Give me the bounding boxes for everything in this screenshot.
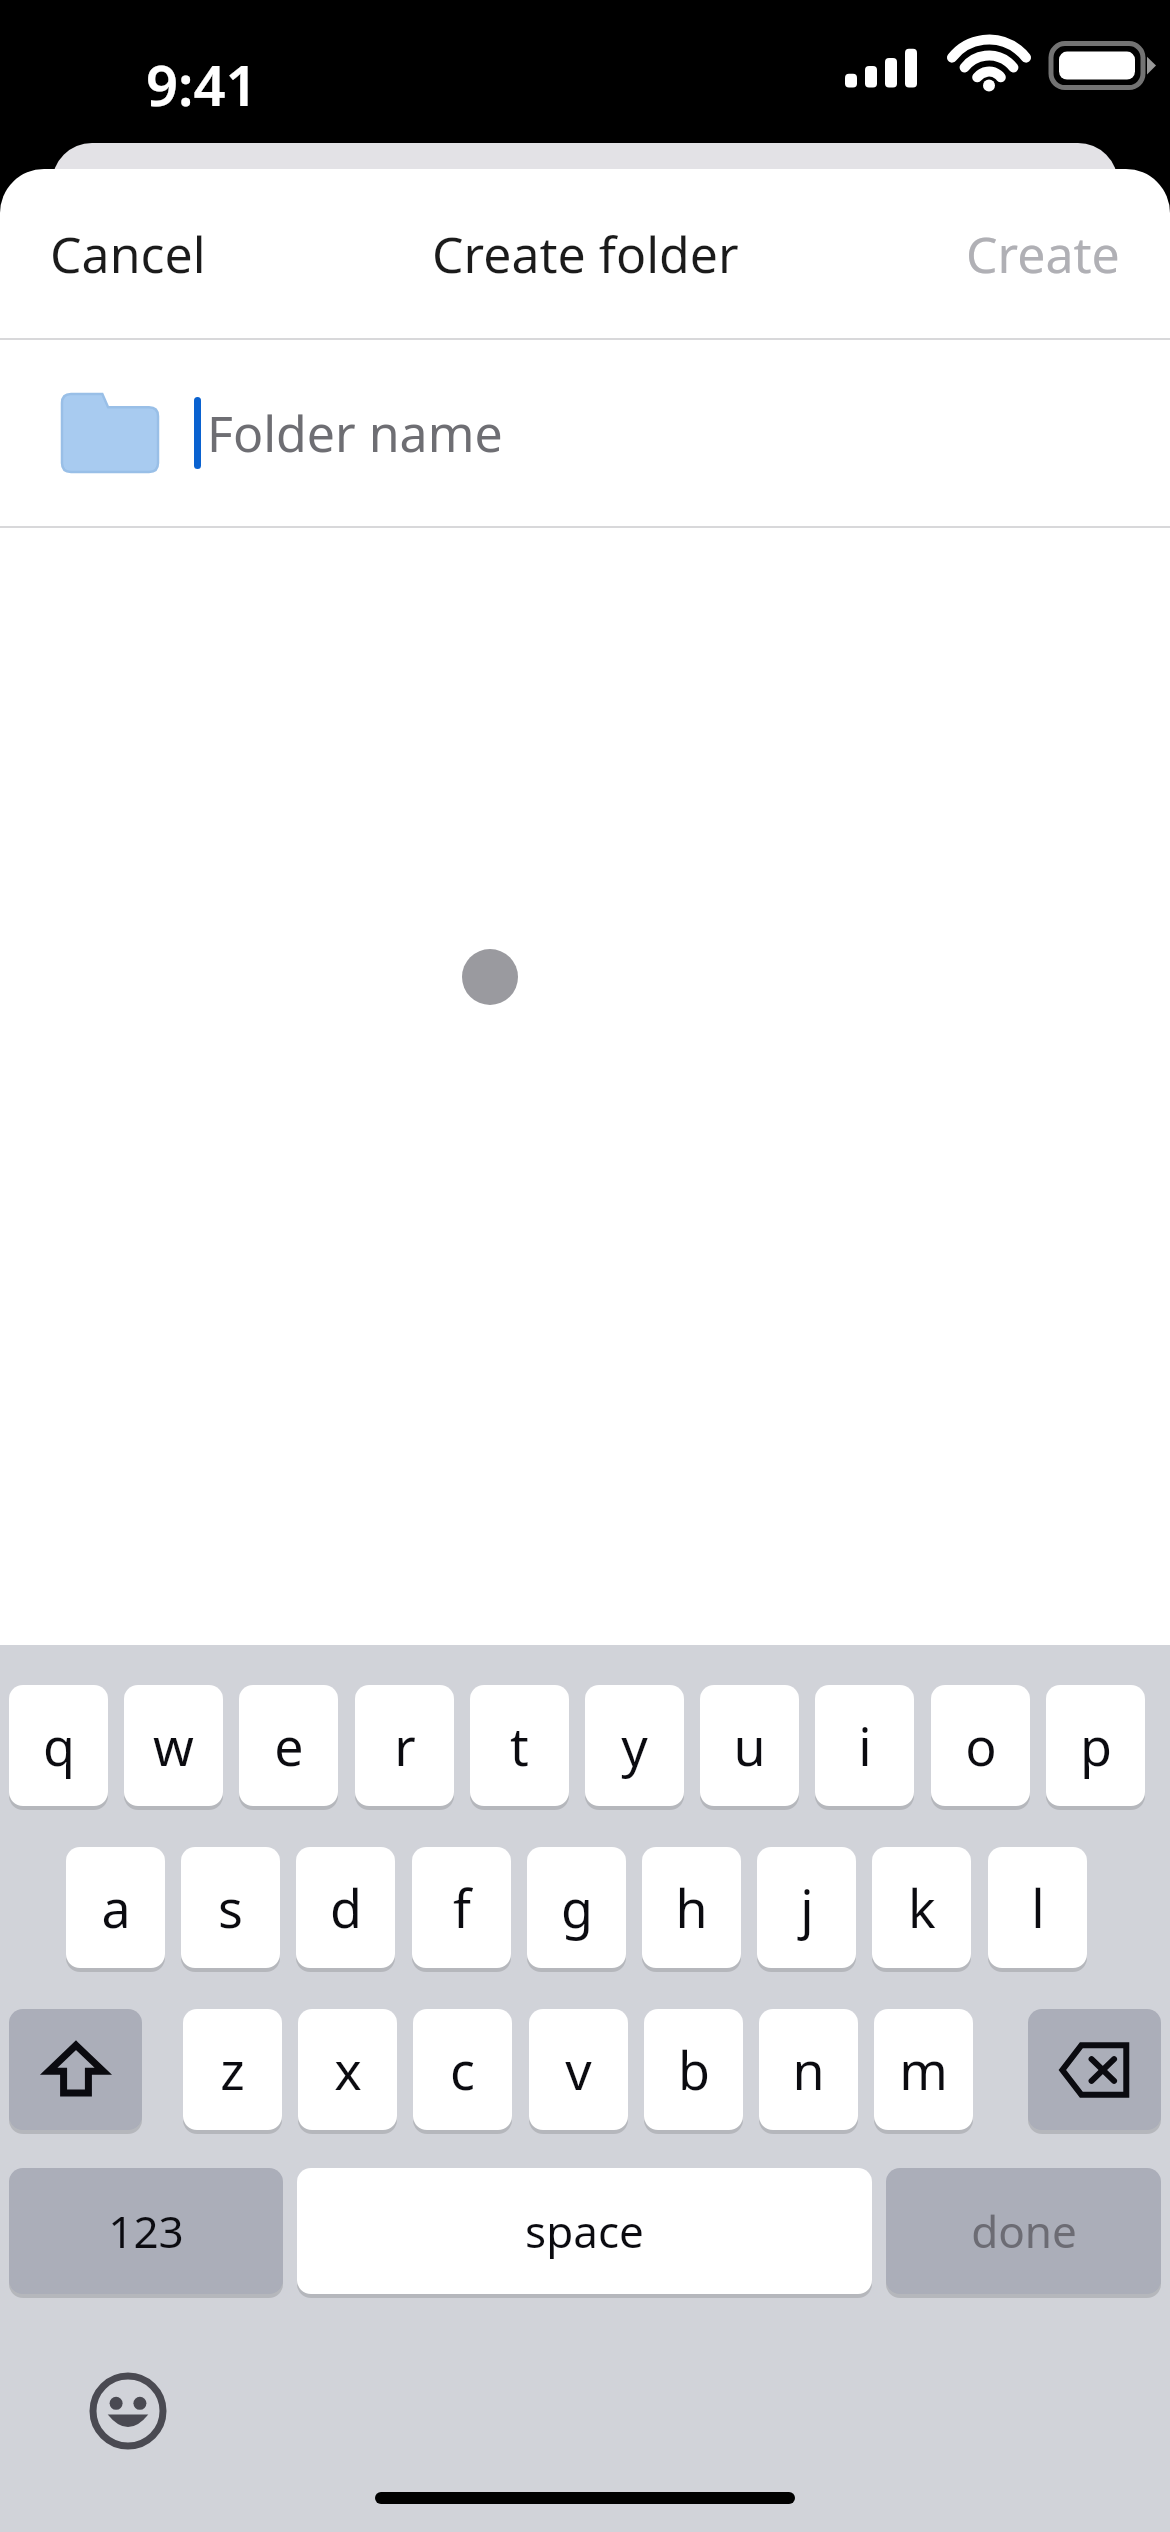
button[interactable]: w: [124, 1685, 223, 1806]
staticText: space: [525, 2201, 644, 2261]
staticText: Folder name: [207, 399, 503, 467]
staticText: v: [565, 2034, 592, 2105]
button[interactable]: d: [296, 1847, 395, 1968]
staticText: o: [965, 1710, 997, 1781]
button[interactable]: j: [757, 1847, 856, 1968]
button[interactable]: Backspace: [1028, 2009, 1161, 2130]
staticText: z: [220, 2034, 245, 2105]
button[interactable]: Cancel: [0, 190, 256, 318]
staticText: w: [153, 1710, 194, 1781]
button[interactable]: c: [413, 2009, 512, 2130]
staticText: m: [899, 2034, 948, 2105]
button[interactable]: t: [470, 1685, 569, 1806]
button[interactable]: s: [181, 1847, 280, 1968]
button[interactable]: p: [1046, 1685, 1145, 1806]
button[interactable]: Emoji keyboard: [72, 2355, 184, 2467]
staticText: 9:41: [146, 46, 258, 122]
staticText: d: [330, 1872, 362, 1943]
staticText: p: [1080, 1710, 1112, 1781]
button[interactable]: u: [700, 1685, 799, 1806]
button[interactable]: v: [529, 2009, 628, 2130]
staticText: f: [453, 1872, 471, 1943]
staticText: t: [510, 1710, 529, 1781]
staticText: a: [101, 1872, 131, 1943]
staticText: n: [792, 2034, 825, 2105]
staticText: y: [621, 1710, 648, 1781]
staticText: x: [334, 2034, 362, 2105]
button[interactable]: space: [297, 2168, 872, 2294]
button[interactable]: r: [355, 1685, 454, 1806]
staticText: i: [858, 1710, 872, 1781]
staticText: 123: [108, 2201, 184, 2261]
button[interactable]: i: [815, 1685, 914, 1806]
staticText: s: [218, 1872, 243, 1943]
staticText: l: [1031, 1872, 1045, 1943]
staticText: done: [971, 2201, 1077, 2261]
button[interactable]: o: [931, 1685, 1030, 1806]
button[interactable]: y: [585, 1685, 684, 1806]
button[interactable]: l: [988, 1847, 1087, 1968]
button[interactable]: z: [183, 2009, 282, 2130]
button[interactable]: a: [66, 1847, 165, 1968]
button[interactable]: h: [642, 1847, 741, 1968]
staticText: e: [274, 1710, 304, 1781]
button[interactable]: n: [759, 2009, 858, 2130]
button[interactable]: f: [412, 1847, 511, 1968]
staticText: q: [43, 1710, 75, 1781]
button[interactable]: b: [644, 2009, 743, 2130]
button[interactable]: m: [874, 2009, 973, 2130]
button[interactable]: Create: [916, 190, 1170, 318]
button[interactable]: q: [9, 1685, 108, 1806]
button[interactable]: Folder name: [0, 340, 1170, 526]
staticText: Create: [966, 220, 1120, 288]
staticText: u: [733, 1710, 766, 1781]
staticText: g: [561, 1872, 593, 1943]
staticText: c: [450, 2034, 475, 2105]
button[interactable]: done: [886, 2168, 1161, 2294]
staticText: Create folder: [432, 220, 739, 288]
button[interactable]: x: [298, 2009, 397, 2130]
staticText: r: [394, 1710, 416, 1781]
staticText: k: [908, 1872, 936, 1943]
button[interactable]: 123: [9, 2168, 283, 2294]
button[interactable]: Shift: [9, 2009, 142, 2130]
button[interactable]: k: [872, 1847, 971, 1968]
staticText: b: [678, 2034, 710, 2105]
button[interactable]: g: [527, 1847, 626, 1968]
staticText: j: [800, 1872, 814, 1943]
button[interactable]: e: [239, 1685, 338, 1806]
staticText: h: [675, 1872, 708, 1943]
staticText: Cancel: [50, 220, 206, 288]
